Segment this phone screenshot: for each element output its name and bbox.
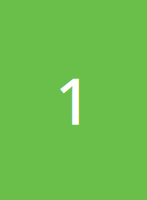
staticText: 1 [55,56,92,144]
